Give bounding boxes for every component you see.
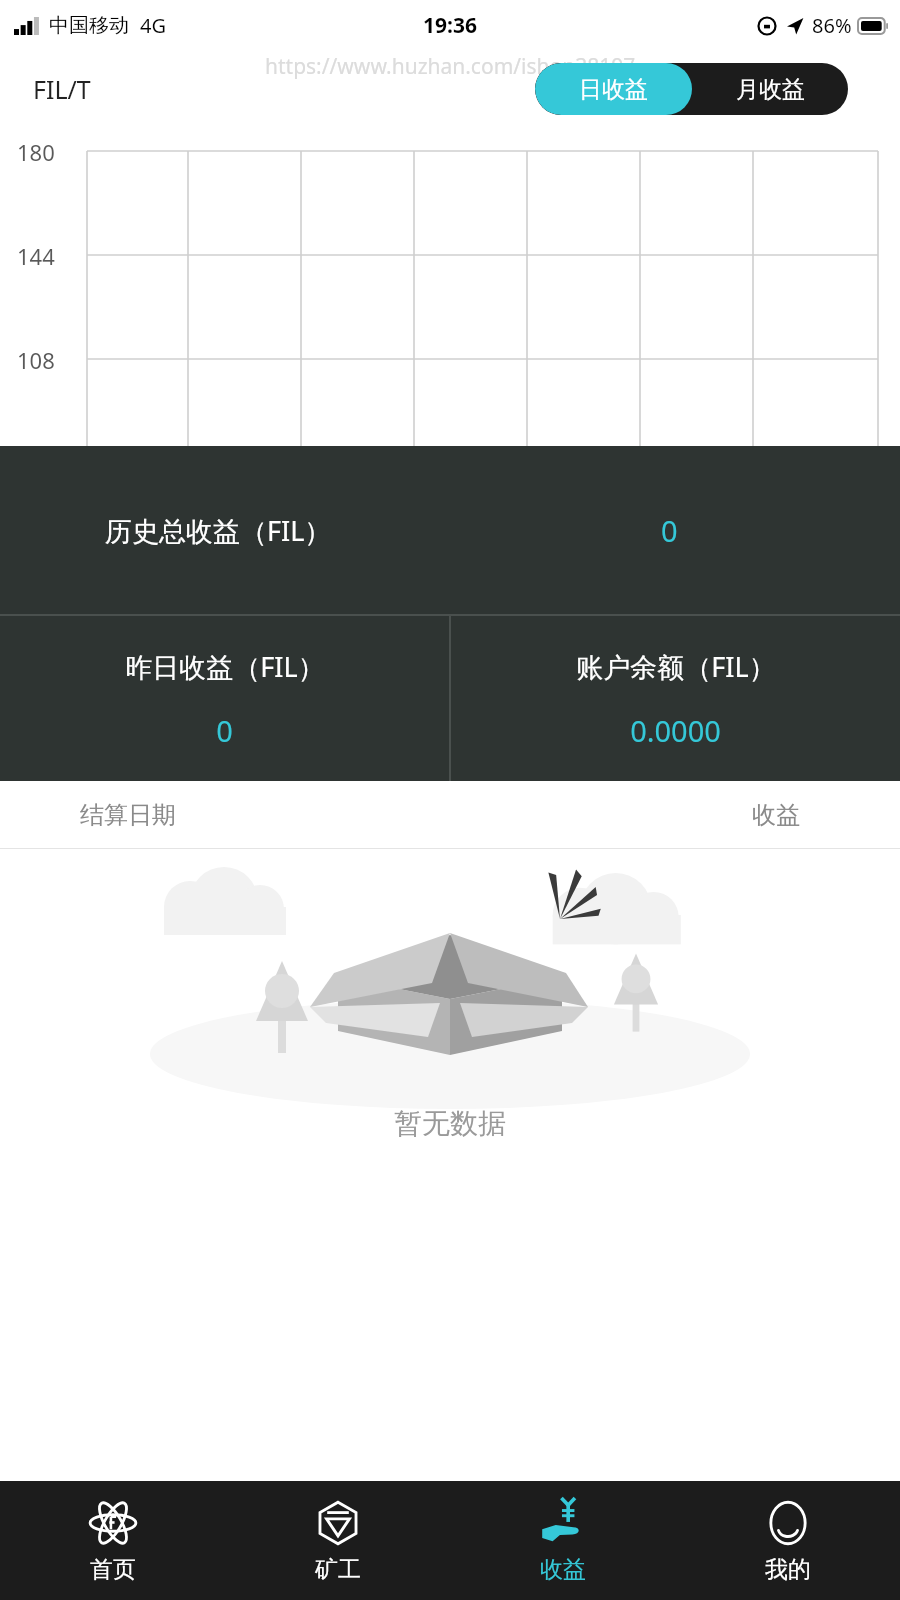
staticText: 108 <box>17 345 55 375</box>
staticText: 4G <box>140 12 166 39</box>
staticText: 144 <box>17 241 55 271</box>
button[interactable]: Miner <box>225 1481 450 1600</box>
button[interactable]: 账户余额（FIL） <box>451 616 900 781</box>
button[interactable]: Profile <box>675 1481 900 1600</box>
staticText: 86% <box>812 12 852 39</box>
staticText: 08-08 <box>147 677 205 707</box>
staticText: https://www.huzhan.com/ishop38197 <box>265 52 636 81</box>
staticText: 历史总收益（FIL） <box>105 512 332 549</box>
staticText: FIL/T <box>33 72 91 106</box>
button[interactable]: 月收益 <box>692 63 848 115</box>
staticText: 0.0000 <box>630 711 721 750</box>
staticText: 0 <box>216 711 233 750</box>
staticText: 矿工 <box>315 1555 361 1584</box>
staticText: 首页 <box>90 1555 136 1584</box>
button[interactable]: 昨日收益（FIL） <box>0 616 449 781</box>
button[interactable]: Home <box>0 1481 225 1600</box>
button[interactable]: Earnings <box>450 1481 675 1600</box>
button[interactable]: 日收益 <box>535 63 692 115</box>
button[interactable]: 历史总收益（FIL） <box>0 446 900 614</box>
staticText: 08-09 <box>260 677 318 707</box>
staticText: 08-12 <box>599 677 657 707</box>
staticText: 昨日收益（FIL） <box>125 648 325 685</box>
staticText: 账户余额（FIL） <box>576 648 776 685</box>
staticText: 我的 <box>765 1555 811 1584</box>
staticText: 日收益 <box>579 75 648 104</box>
staticText: 月收益 <box>736 75 805 104</box>
staticText: 暂无数据 <box>394 1106 506 1141</box>
staticText: 08-13 <box>712 677 770 707</box>
staticText: 收益 <box>752 800 800 830</box>
staticText: 19:36 <box>423 11 477 40</box>
staticText: 0 <box>661 511 678 550</box>
staticText: 中国移动 <box>49 13 129 38</box>
staticText: 180 <box>17 137 55 167</box>
staticText: 结算日期 <box>80 800 176 830</box>
staticText: 收益 <box>540 1555 586 1584</box>
